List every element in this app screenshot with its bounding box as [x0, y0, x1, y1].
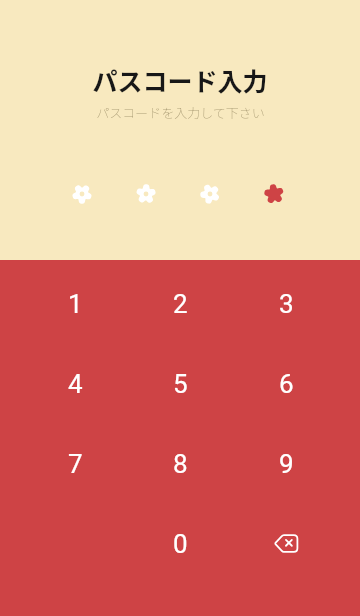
staticText: パスコード入力 [92, 62, 268, 98]
button[interactable]: 4 [35, 354, 115, 414]
button[interactable]: 7 [35, 434, 115, 494]
staticText: 9 [279, 449, 294, 479]
button[interactable]: 3 [246, 274, 326, 334]
staticText: 3 [279, 289, 294, 319]
staticText: 0 [173, 529, 188, 559]
staticText: 5 [173, 369, 188, 399]
button[interactable]: 1 [35, 274, 115, 334]
staticText: 1 [68, 289, 83, 319]
staticText: 2 [173, 289, 188, 319]
button[interactable]: 9 [246, 434, 326, 494]
button[interactable]: Delete [246, 514, 326, 574]
button[interactable]: 0 [140, 514, 220, 574]
staticText: 4 [68, 369, 83, 399]
staticText: パスコードを入力して下さい [96, 103, 265, 122]
staticText: 7 [68, 449, 83, 479]
staticText: 8 [173, 449, 188, 479]
button[interactable]: 6 [246, 354, 326, 414]
button[interactable]: 8 [140, 434, 220, 494]
button[interactable]: 2 [140, 274, 220, 334]
button[interactable]: 5 [140, 354, 220, 414]
staticText: 6 [279, 369, 294, 399]
